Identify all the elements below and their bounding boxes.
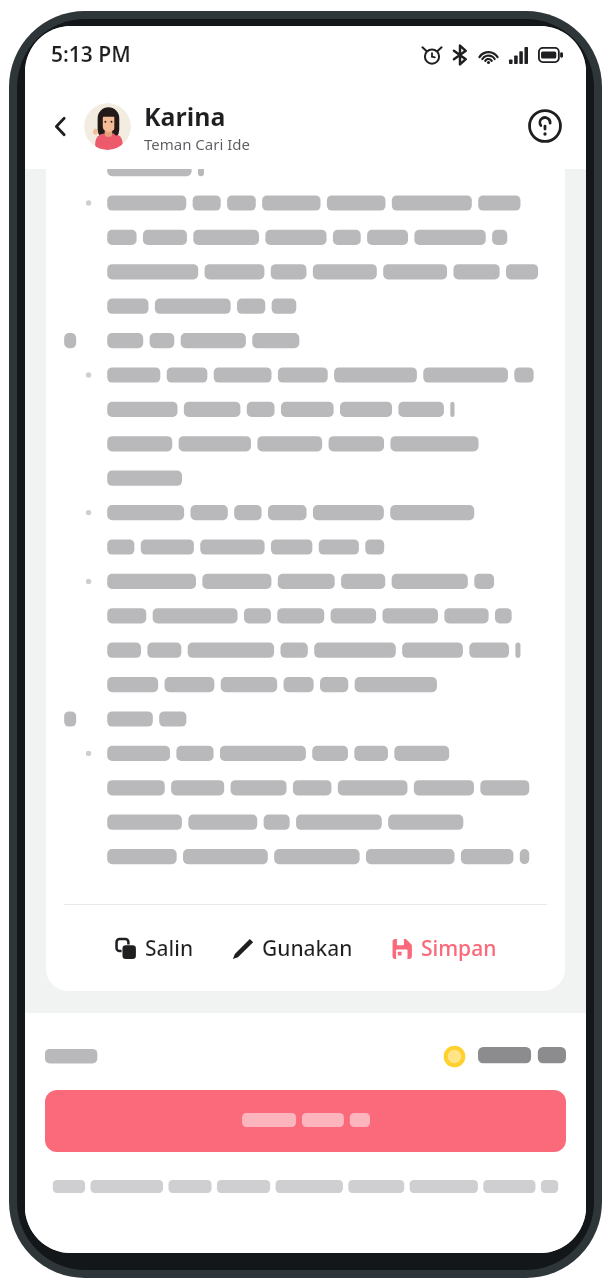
button[interactable]: Salin (110, 925, 199, 972)
staticText: Gunakan (262, 934, 353, 963)
staticText: 5:13 PM (51, 40, 131, 69)
button[interactable]: Help (522, 103, 568, 149)
button[interactable]: Simpan (386, 925, 502, 972)
staticText: Salin (145, 934, 194, 963)
button[interactable]: Back (38, 104, 82, 148)
staticText: Karina (144, 99, 226, 133)
staticText: Teman Cari Ide (144, 134, 250, 154)
staticText: Simpan (421, 934, 497, 963)
button[interactable]: Profile picture (84, 103, 131, 150)
button[interactable]: Gunakan (227, 925, 358, 972)
button[interactable] (45, 1090, 566, 1152)
button[interactable]: Karina (144, 99, 522, 154)
